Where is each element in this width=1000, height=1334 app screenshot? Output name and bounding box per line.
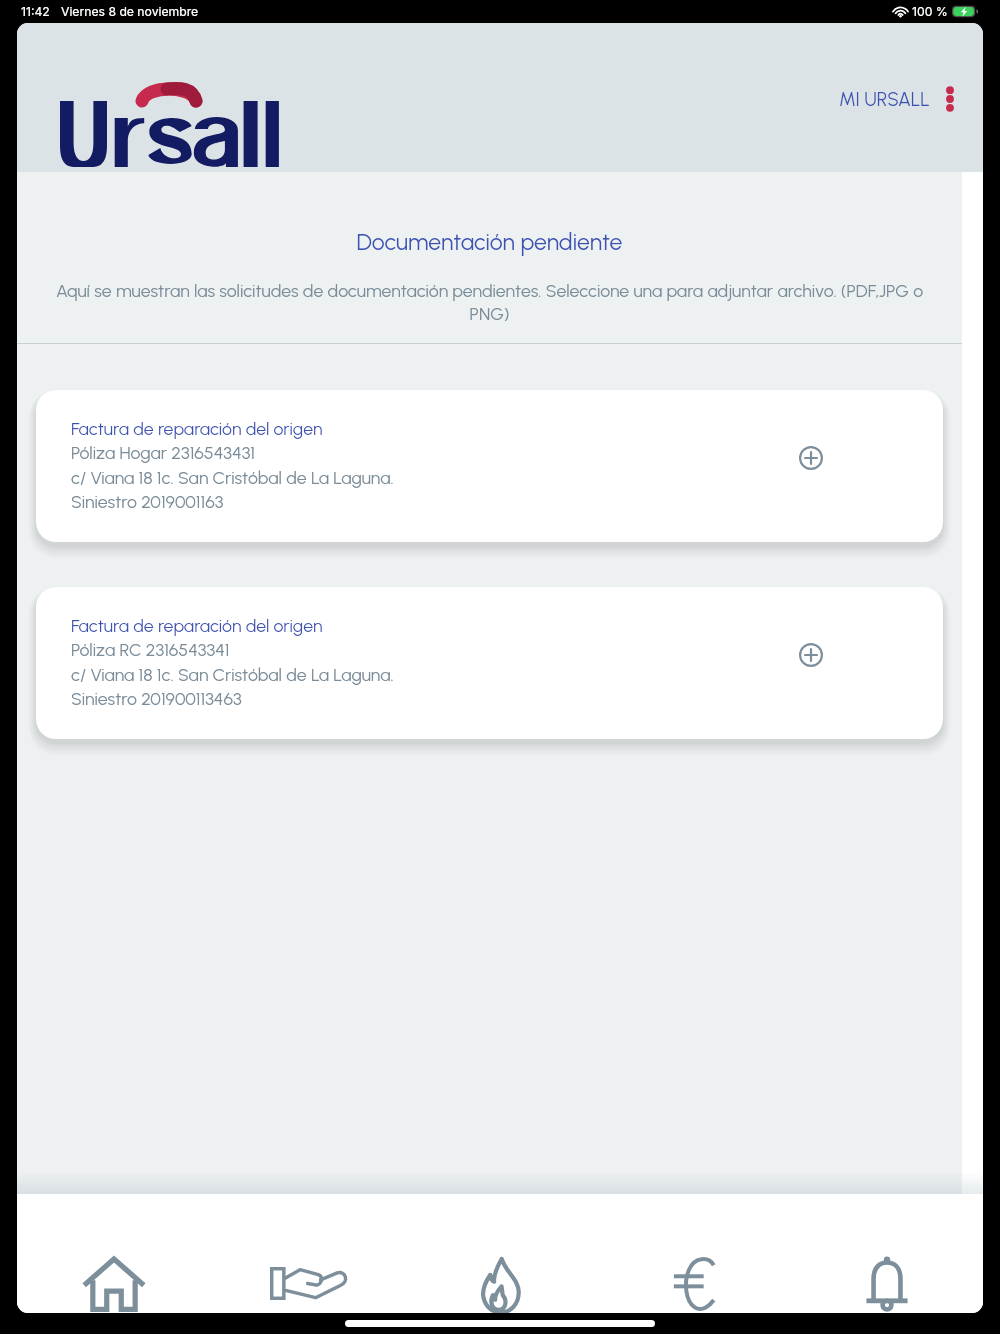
staticText: Documentación pendiente [17, 228, 962, 256]
button[interactable]: Notificaciones [790, 1194, 983, 1313]
button[interactable]: Servicios [211, 1194, 404, 1313]
staticText: 100 % [912, 4, 948, 19]
button[interactable]: Siniestros [404, 1194, 597, 1313]
button[interactable]: Adjuntar archivo [789, 436, 833, 480]
staticText: MI URSALL [839, 88, 930, 111]
staticText: Póliza Hogar 2316543431 [71, 442, 256, 463]
staticText: c/ Viana 18 1c. San Cristóbal de La Lagu… [71, 467, 394, 488]
staticText: Siniestro 2019001163 [71, 491, 224, 512]
button[interactable]: Inicio [17, 1194, 211, 1313]
staticText: 11:42 [21, 4, 50, 19]
staticText: Factura de reparación del origen [71, 418, 323, 439]
staticText: Aquí se muestran las solicitudes de docu… [50, 280, 929, 325]
button[interactable]: Pagos [597, 1194, 790, 1313]
button[interactable]: Más opciones [938, 81, 962, 117]
staticText: Viernes 8 de noviembre [61, 4, 199, 19]
staticText: Factura de reparación del origen [71, 615, 323, 636]
staticText: c/ Viana 18 1c. San Cristóbal de La Lagu… [71, 664, 394, 685]
button[interactable]: Adjuntar archivo [789, 633, 833, 677]
staticText: Póliza RC 2316543341 [71, 639, 230, 660]
button[interactable]: Factura de reparación del origen [36, 390, 943, 542]
staticText: Siniestro 201900113463 [71, 688, 242, 709]
button[interactable]: Factura de reparación del origen [36, 587, 943, 739]
